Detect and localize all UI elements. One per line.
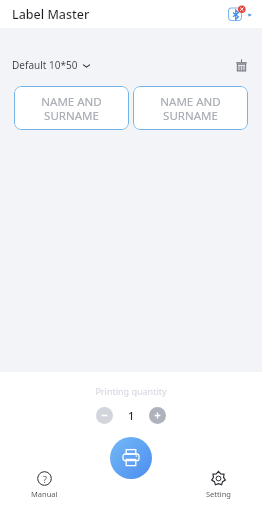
staticText: 1	[128, 408, 135, 423]
button[interactable]: NAME AND SURNAME	[14, 86, 129, 130]
button[interactable]: Default 10*50	[12, 58, 91, 72]
button[interactable]: Increase	[149, 407, 166, 424]
staticText: NAME AND SURNAME	[160, 94, 221, 123]
button[interactable]: Clear labels	[232, 56, 250, 74]
staticText: ?	[43, 473, 47, 485]
button[interactable]: Decrease	[96, 407, 113, 424]
staticText: Printing quantity	[0, 385, 262, 397]
button[interactable]: Setting	[200, 471, 237, 499]
button[interactable]: Bluetooth not connected	[227, 5, 254, 24]
staticText: Manual	[31, 489, 58, 499]
staticText: NAME AND SURNAME	[41, 94, 102, 123]
staticText: Default 10*50	[12, 58, 78, 72]
staticText: Label Master	[12, 6, 90, 23]
button[interactable]: ?	[25, 471, 64, 499]
button[interactable]: NAME AND SURNAME	[133, 86, 248, 130]
staticText: Setting	[206, 489, 231, 499]
button[interactable]: Print	[110, 437, 152, 479]
